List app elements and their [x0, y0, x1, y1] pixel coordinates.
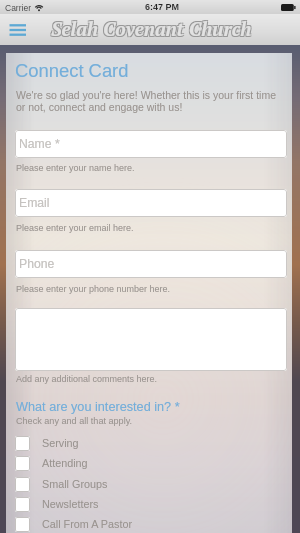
button[interactable]: Newsletters: [6, 494, 292, 514]
staticText: Name *: [19, 137, 60, 151]
staticText: Newsletters: [42, 498, 99, 510]
staticText: 6:47 PM: [145, 2, 180, 12]
button[interactable]: [15, 308, 287, 371]
button[interactable]: Call From A Pastor: [6, 514, 292, 533]
staticText: Small Groups: [42, 478, 108, 490]
staticText: Call From A Pastor: [42, 518, 133, 530]
button[interactable]: Small Groups: [6, 474, 292, 494]
staticText: Email: [19, 196, 50, 210]
staticText: Selah Covenant Church: [52, 15, 253, 40]
staticText: Phone: [19, 257, 55, 271]
staticText: Serving: [42, 437, 79, 449]
staticText: Please enter your phone number here.: [16, 284, 171, 294]
button[interactable]: Name *: [15, 130, 287, 158]
button[interactable]: Open navigation menu: [5, 19, 29, 41]
staticText: Selah Covenant Church: [50, 15, 251, 40]
staticText: Selah Covenant Church: [52, 17, 253, 42]
staticText: Check any and all that apply.: [16, 416, 133, 426]
button[interactable]: Phone: [15, 250, 287, 278]
button[interactable]: Attending: [6, 453, 292, 473]
button[interactable]: Serving: [6, 433, 292, 453]
button[interactable]: Email: [15, 189, 287, 217]
staticText: Please enter your email here.: [16, 223, 134, 233]
staticText: Please enter your name here.: [16, 163, 135, 173]
staticText: Add any additional comments here.: [16, 374, 158, 384]
staticText: Attending: [42, 457, 88, 469]
staticText: Carrier: [5, 3, 31, 12]
staticText: Connect Card: [15, 60, 129, 81]
staticText: We're so glad you're here! Whether this …: [16, 89, 276, 114]
staticText: Selah Covenant Church: [51, 16, 252, 41]
staticText: What are you interested in? *: [16, 400, 180, 414]
staticText: Selah Covenant Church: [50, 17, 251, 42]
